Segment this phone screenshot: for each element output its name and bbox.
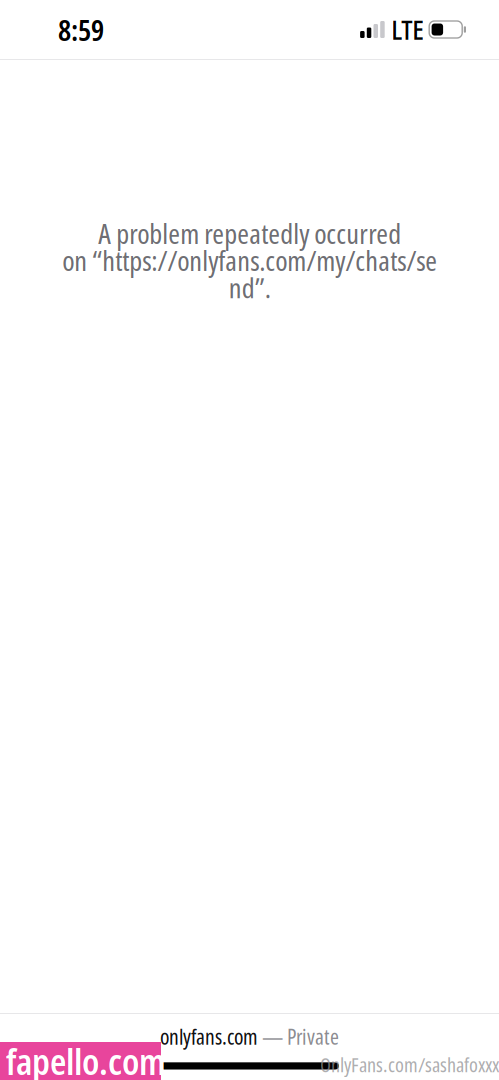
staticText: LTE xyxy=(391,11,424,48)
staticText: fapello.com xyxy=(6,1036,166,1080)
staticText: — xyxy=(258,1022,287,1051)
staticText: OnlyFans.com/sashafoxxx xyxy=(320,1051,499,1078)
button[interactable]: onlyfans.com xyxy=(0,1014,499,1059)
staticText: Private xyxy=(287,1022,339,1051)
staticText: A problem repeatedly occurred on “https:… xyxy=(62,214,437,306)
staticText: onlyfans.com xyxy=(160,1022,258,1051)
staticText: 8:59 xyxy=(58,9,104,49)
